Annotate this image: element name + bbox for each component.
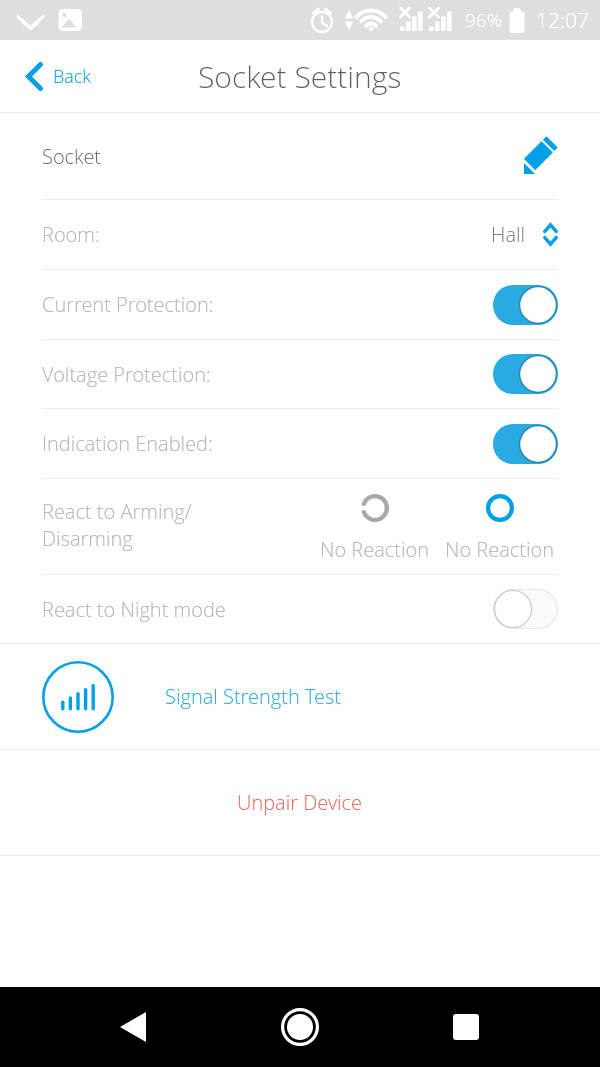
staticText: Disarming xyxy=(42,525,133,552)
button[interactable]: Signal Strength Test xyxy=(42,644,600,749)
button[interactable]: No Reaction xyxy=(313,494,437,563)
staticText: Current Protection: xyxy=(42,291,214,318)
button[interactable]: React to Night mode xyxy=(42,575,558,643)
staticText: Indication Enabled: xyxy=(42,430,213,457)
button[interactable]: Toggle xyxy=(493,285,558,325)
button[interactable]: Socket xyxy=(42,113,558,199)
staticText: React to Night mode xyxy=(42,596,226,623)
button[interactable]: Room: xyxy=(42,200,558,269)
staticText: Voltage Protection: xyxy=(42,361,211,388)
staticText: Room: xyxy=(42,221,100,248)
button[interactable]: Back xyxy=(103,997,163,1057)
staticText: React to Arming/ xyxy=(42,498,192,525)
button[interactable]: Back xyxy=(26,62,92,91)
staticText: Back xyxy=(53,64,92,89)
staticText: 96% xyxy=(465,7,503,33)
staticText: Signal Strength Test xyxy=(165,683,341,710)
button[interactable]: Unpair Device xyxy=(0,750,600,855)
button[interactable]: Home xyxy=(270,997,330,1057)
staticText: 12:07 xyxy=(536,6,589,35)
button[interactable]: Recent apps xyxy=(436,997,496,1057)
staticText: Unpair Device xyxy=(237,789,363,816)
staticText: Hall xyxy=(491,221,526,248)
button[interactable]: Current Protection: xyxy=(42,270,558,339)
staticText: No Reaction xyxy=(320,536,430,563)
staticText: Socket Settings xyxy=(198,56,402,97)
button[interactable]: Toggle xyxy=(493,354,558,394)
staticText: Socket xyxy=(42,143,102,170)
button[interactable]: No Reaction xyxy=(438,494,562,563)
staticText: No Reaction xyxy=(445,536,555,563)
button[interactable]: Toggle xyxy=(493,589,558,629)
button[interactable]: Toggle xyxy=(493,424,558,464)
button[interactable]: Voltage Protection: xyxy=(42,340,558,408)
button[interactable]: Indication Enabled: xyxy=(42,409,558,478)
button[interactable]: Edit name xyxy=(516,135,558,177)
other: Change room xyxy=(543,223,558,246)
